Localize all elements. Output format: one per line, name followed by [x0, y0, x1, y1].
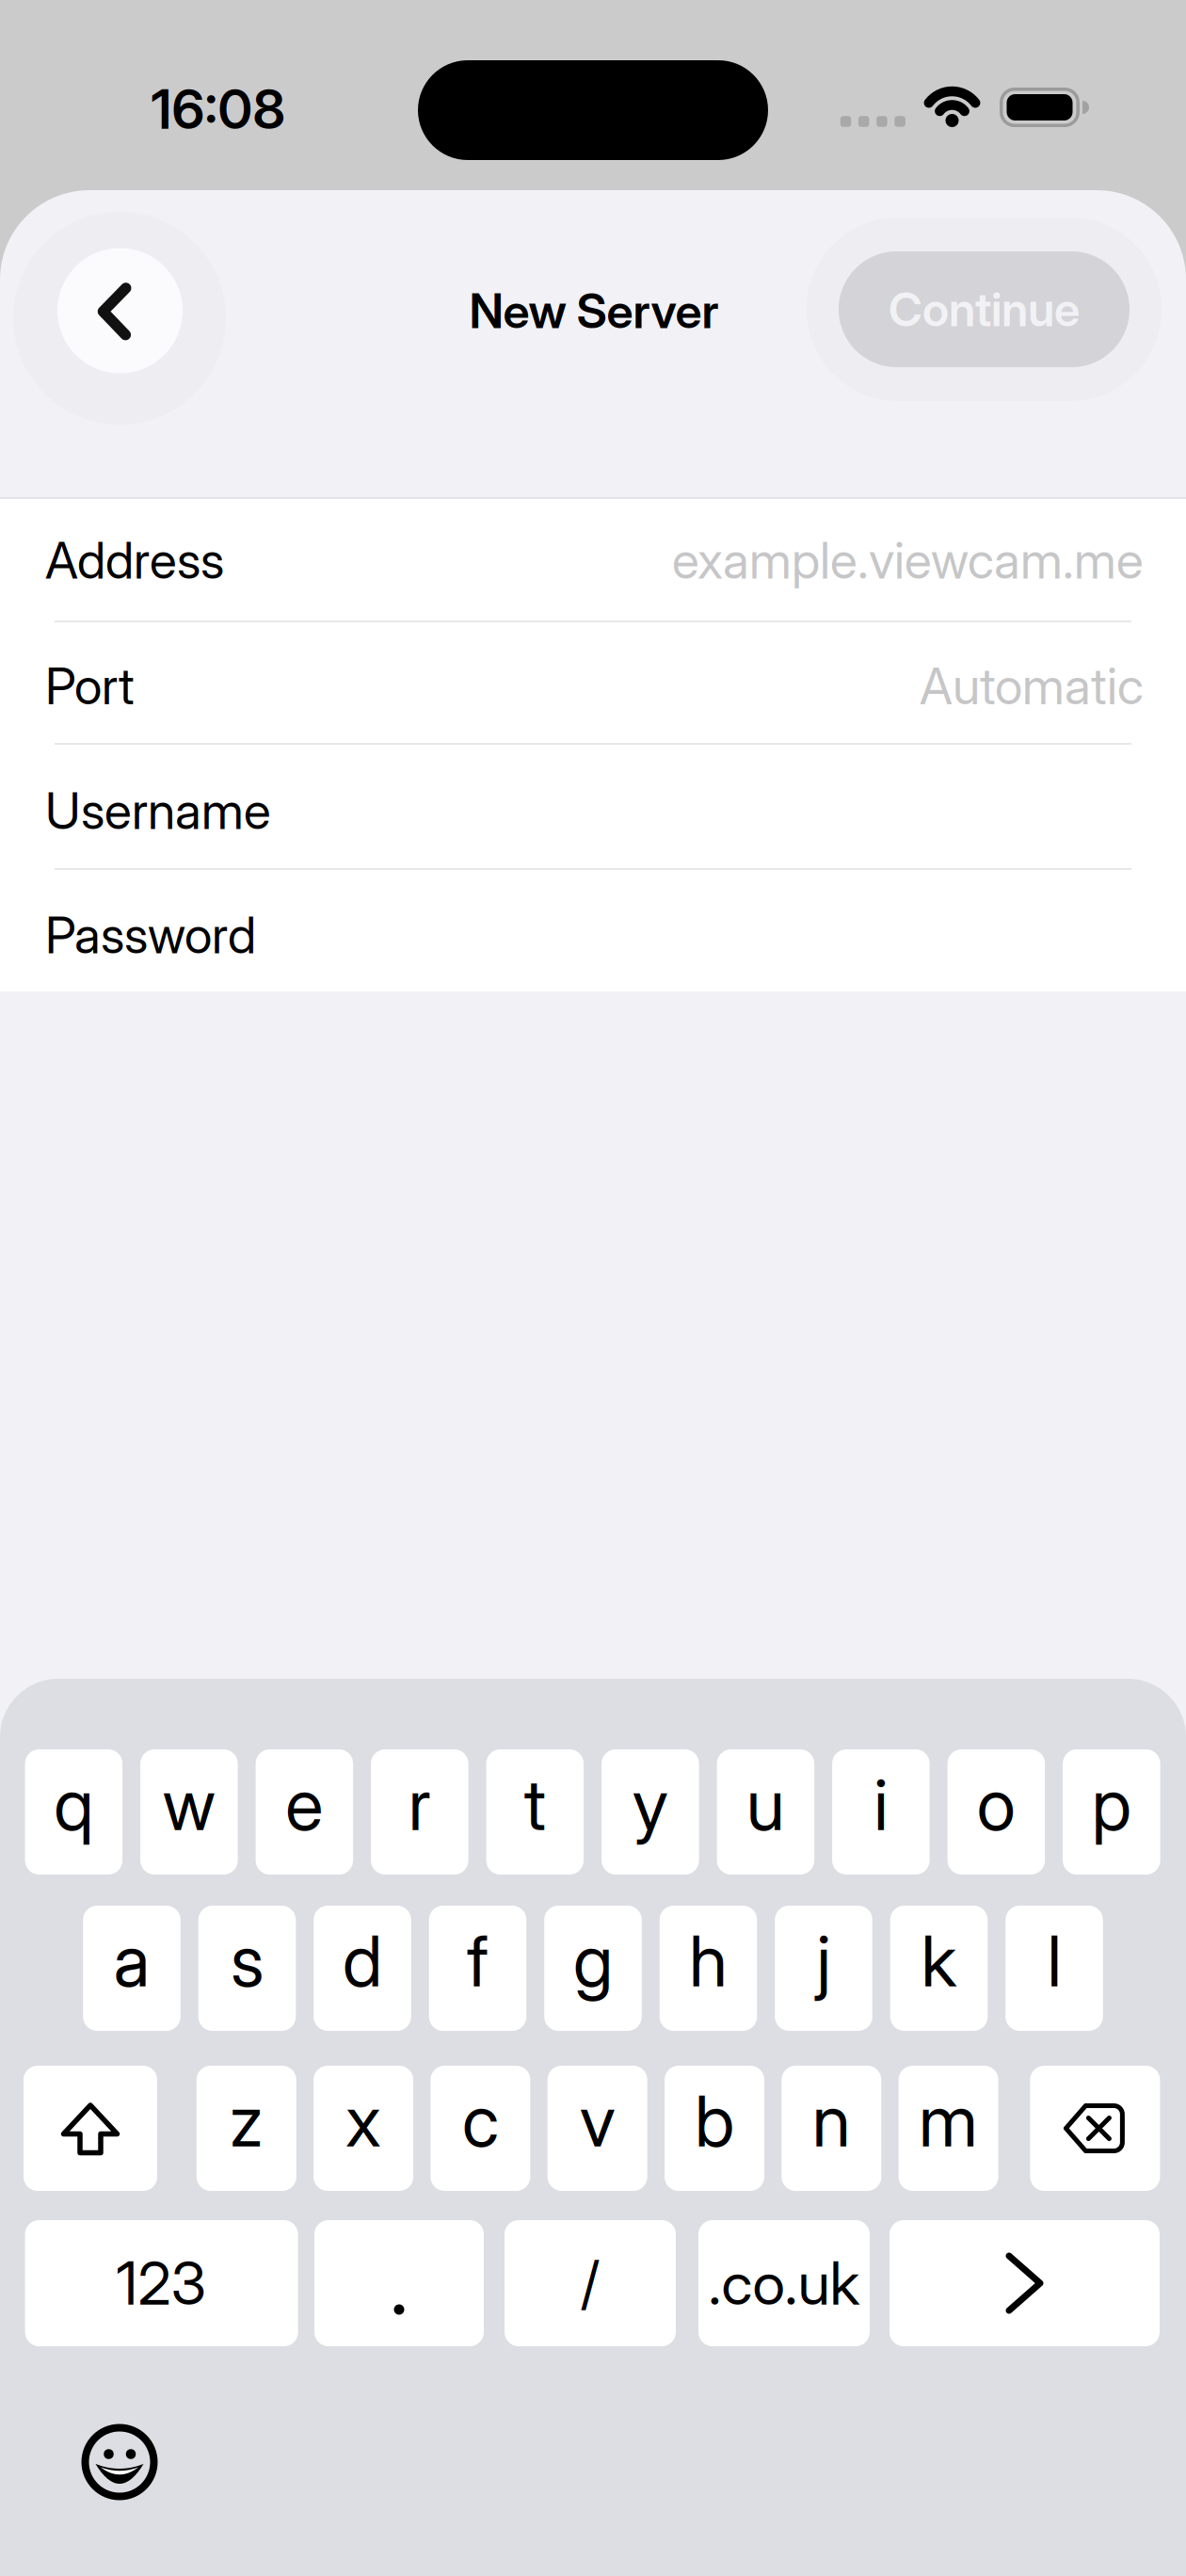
staticText: 123 — [116, 2248, 207, 2318]
staticText: m — [919, 2079, 978, 2162]
staticText: l — [1047, 1919, 1061, 2002]
staticText: t — [524, 1763, 546, 1846]
staticText: h — [689, 1919, 728, 2002]
staticText: Password — [45, 905, 256, 964]
button[interactable]: i — [832, 1749, 930, 1875]
button[interactable]: z — [197, 2066, 296, 2191]
staticText: w — [163, 1763, 215, 1846]
button[interactable]: o — [947, 1749, 1045, 1875]
button[interactable]: s — [198, 1906, 296, 2031]
staticText: f — [467, 1919, 489, 2002]
staticText: r — [408, 1763, 431, 1846]
staticText: i — [874, 1763, 888, 1846]
staticText: Port — [45, 656, 135, 715]
button[interactable]: v — [548, 2066, 647, 2191]
staticText: 16:08 — [151, 77, 286, 141]
staticText: x — [346, 2079, 381, 2162]
staticText: e — [286, 1763, 323, 1846]
button[interactable]: k — [890, 1906, 988, 2031]
button[interactable]: / — [505, 2220, 676, 2346]
button[interactable]: Delete — [1030, 2066, 1160, 2191]
staticText: k — [921, 1919, 957, 2002]
button[interactable]: w — [140, 1749, 238, 1875]
button[interactable]: Back — [57, 248, 183, 373]
staticText: o — [977, 1763, 1015, 1846]
staticText: u — [746, 1763, 785, 1846]
button[interactable]: j — [775, 1906, 872, 2031]
button[interactable]: p — [1063, 1749, 1160, 1875]
staticText: Address — [45, 531, 224, 590]
staticText: Username — [45, 781, 271, 840]
button[interactable]: .co.uk — [698, 2220, 870, 2346]
button[interactable]: Return — [889, 2220, 1160, 2346]
staticText: Automatic — [920, 656, 1144, 715]
button[interactable]: l — [1005, 1906, 1103, 2031]
button[interactable]: r — [371, 1749, 468, 1875]
button[interactable]: y — [602, 1749, 699, 1875]
button[interactable]: n — [782, 2066, 881, 2191]
button[interactable]: c — [431, 2066, 530, 2191]
button[interactable]: d — [314, 1906, 411, 2031]
button[interactable]: q — [25, 1749, 122, 1875]
staticText: .co.uk — [708, 2248, 860, 2318]
button[interactable]: Period — [314, 2220, 484, 2346]
staticText: g — [573, 1919, 613, 2002]
staticText: q — [54, 1763, 93, 1846]
button[interactable]: x — [314, 2066, 413, 2191]
button[interactable]: g — [544, 1906, 642, 2031]
button[interactable]: Emoji — [72, 2415, 167, 2509]
button[interactable]: h — [660, 1906, 757, 2031]
staticText: Continue — [889, 282, 1080, 337]
staticText: p — [1092, 1763, 1131, 1846]
staticText: example.viewcam.me — [672, 531, 1144, 590]
button[interactable]: Password — [0, 874, 1186, 996]
button[interactable]: Username — [0, 749, 1186, 872]
staticText: y — [632, 1763, 668, 1846]
staticText: New Server — [469, 283, 719, 339]
button[interactable]: 123 — [25, 2220, 298, 2346]
staticText: a — [113, 1919, 150, 2002]
staticText: z — [229, 2079, 263, 2162]
staticText: n — [812, 2079, 851, 2162]
staticText: / — [581, 2249, 600, 2317]
button[interactable]: b — [665, 2066, 764, 2191]
button[interactable]: e — [256, 1749, 353, 1875]
button[interactable]: Port — [0, 625, 1186, 747]
staticText: j — [817, 1919, 831, 2002]
staticText: s — [231, 1919, 264, 2002]
button[interactable]: t — [486, 1749, 584, 1875]
button[interactable]: Continue — [839, 251, 1130, 367]
button[interactable]: f — [429, 1906, 526, 2031]
button[interactable]: m — [899, 2066, 998, 2191]
staticText: v — [580, 2079, 615, 2162]
staticText: b — [695, 2079, 734, 2162]
button[interactable]: Shift — [24, 2066, 157, 2191]
staticText: d — [343, 1919, 382, 2002]
button[interactable]: Address — [0, 499, 1186, 621]
staticText: c — [462, 2079, 499, 2162]
button[interactable]: u — [717, 1749, 814, 1875]
button[interactable]: a — [83, 1906, 180, 2031]
